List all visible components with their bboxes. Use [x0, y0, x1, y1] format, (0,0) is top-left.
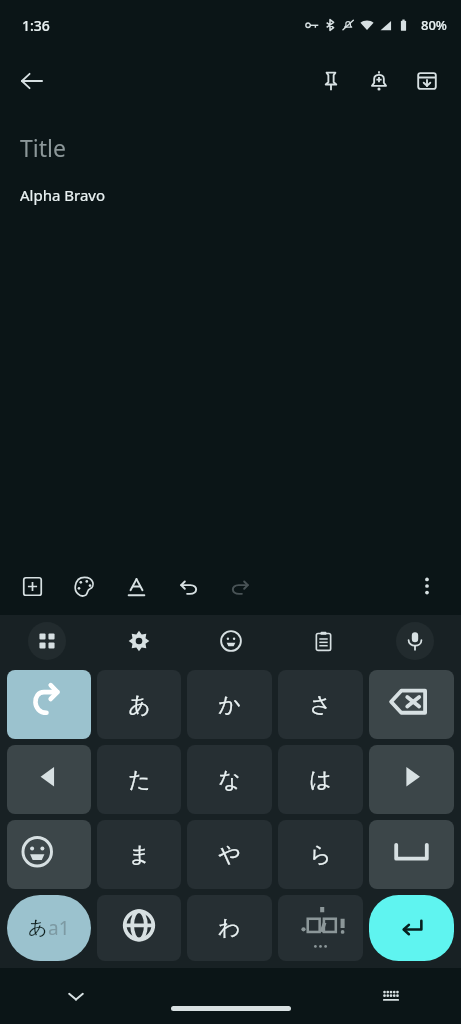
button[interactable]: Redo [214, 560, 266, 612]
button[interactable]: か [187, 670, 272, 739]
button[interactable]: Change language [97, 895, 181, 961]
button[interactable]: や [187, 820, 272, 889]
staticText: な [218, 766, 241, 794]
staticText: た [128, 766, 151, 794]
staticText: さ [309, 691, 332, 719]
button[interactable]: Cursor right [369, 745, 454, 814]
staticText: a1 [48, 915, 70, 941]
button[interactable]: Punctuation [278, 895, 363, 961]
button[interactable]: Toolbox [28, 622, 66, 660]
button[interactable]: Emoji and symbols [7, 820, 91, 889]
button[interactable]: Add reminder [355, 57, 403, 105]
staticText: か [218, 691, 241, 719]
staticText: あ [128, 691, 151, 719]
button[interactable]: ら [278, 820, 363, 889]
button[interactable]: た [97, 745, 181, 814]
button[interactable]: Hide keyboard [56, 976, 96, 1016]
button[interactable]: Title [20, 132, 441, 163]
staticText: 80% [421, 16, 447, 34]
button[interactable]: Clipboard [277, 615, 369, 667]
button[interactable]: Settings [93, 615, 185, 667]
staticText: は [309, 766, 332, 794]
button[interactable]: Space [369, 820, 454, 889]
button[interactable]: Pin [307, 57, 355, 105]
button[interactable]: Emoji [185, 615, 277, 667]
button[interactable]: More options [403, 562, 451, 610]
button[interactable]: Alpha Bravo [20, 185, 441, 557]
staticText: あ [28, 916, 48, 940]
button[interactable]: Add [6, 560, 58, 612]
button[interactable]: わ [187, 895, 272, 961]
button[interactable]: Archive [403, 57, 451, 105]
button[interactable]: さ [278, 670, 363, 739]
staticText: ま [128, 841, 151, 869]
button[interactable]: Voice input [396, 622, 434, 660]
button[interactable]: Enter [369, 895, 454, 961]
button[interactable]: Cursor left [7, 745, 91, 814]
button[interactable]: Home [171, 1006, 291, 1011]
button[interactable]: な [187, 745, 272, 814]
button[interactable]: は [278, 745, 363, 814]
button[interactable]: あ [7, 895, 91, 961]
button[interactable]: ま [97, 820, 181, 889]
staticText: Title [20, 132, 66, 163]
staticText: 1:36 [22, 16, 50, 35]
button[interactable]: Formatting [110, 560, 162, 612]
staticText: わ [218, 914, 241, 942]
button[interactable]: あ [97, 670, 181, 739]
button[interactable]: Undo [7, 670, 91, 739]
button[interactable]: Undo [162, 560, 214, 612]
button[interactable]: Backspace [369, 670, 454, 739]
staticText: や [218, 841, 241, 869]
button[interactable]: Switch keyboard [371, 976, 411, 1016]
staticText: ら [309, 841, 332, 869]
button[interactable]: Background colour [58, 560, 110, 612]
staticText: Alpha Bravo [20, 185, 106, 205]
button[interactable]: Back [8, 57, 56, 105]
